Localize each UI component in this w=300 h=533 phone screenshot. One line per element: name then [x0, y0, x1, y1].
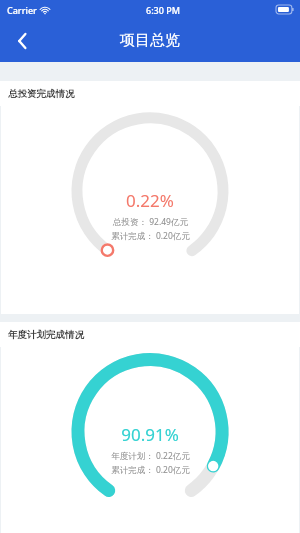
staticText: 90.91%	[121, 423, 179, 446]
staticText: Carrier	[7, 4, 37, 16]
staticText: 项目总览	[120, 31, 180, 50]
staticText: 累计完成： 0.20亿元	[111, 464, 190, 476]
staticText: 累计完成： 0.20亿元	[111, 230, 190, 242]
staticText: 年度计划： 0.22亿元	[111, 450, 190, 462]
staticText: 0.22%	[126, 189, 174, 212]
staticText: 总投资： 92.49亿元	[113, 216, 188, 228]
staticText: 6:30 PM	[146, 4, 180, 16]
button[interactable]: 0.22%	[1, 106, 299, 314]
button[interactable]: 90.91%	[1, 347, 299, 533]
staticText: 年度计划完成情况	[8, 329, 84, 341]
staticText: 总投资完成情况	[8, 88, 75, 100]
button[interactable]: 年度计划完成情况	[0, 322, 300, 347]
button[interactable]: 总投资完成情况	[0, 81, 300, 106]
button[interactable]: Back	[0, 19, 44, 62]
